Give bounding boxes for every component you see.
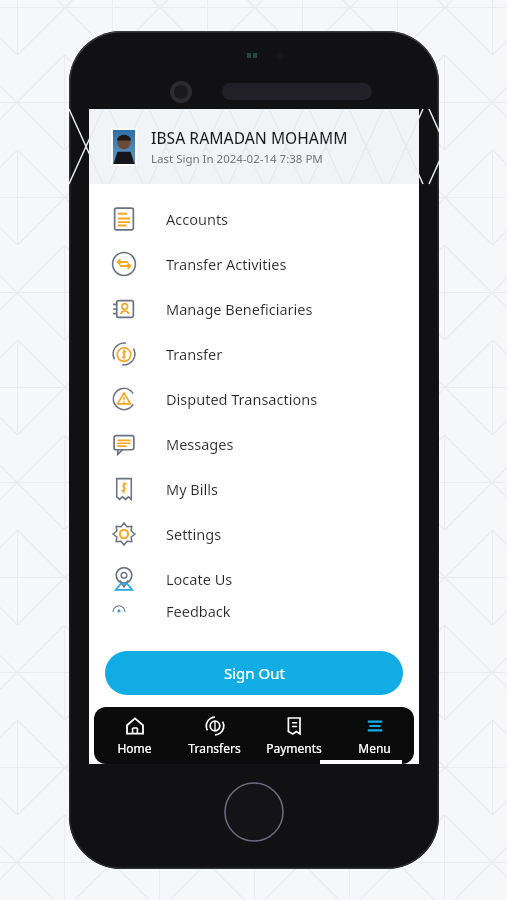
staticText: Disputed Transactions <box>166 389 318 409</box>
button[interactable]: Manage Beneficiaries <box>89 286 419 331</box>
staticText: Last Sign In 2024-02-14 7:38 PM <box>151 151 323 167</box>
button[interactable]: Menu <box>334 707 414 764</box>
button[interactable]: Disputed Transactions <box>89 376 419 421</box>
button[interactable]: Accounts <box>89 196 419 241</box>
staticText: My Bills <box>166 479 218 499</box>
button[interactable]: Home button <box>225 783 283 841</box>
staticText: Sign Out <box>224 663 285 683</box>
staticText: IBSA RAMADAN MOHAMM <box>151 127 348 148</box>
button[interactable]: Settings <box>89 511 419 556</box>
button[interactable]: My Bills <box>89 466 419 511</box>
button[interactable]: Home <box>94 707 174 764</box>
button[interactable]: Locate Us <box>89 556 419 601</box>
button[interactable]: Transfer Activities <box>89 241 419 286</box>
staticText: Payments <box>266 740 322 756</box>
staticText: Transfers <box>188 740 241 756</box>
button[interactable]: Transfers <box>174 707 254 764</box>
staticText: Accounts <box>166 209 229 229</box>
staticText: Feedback <box>166 601 231 617</box>
staticText: Manage Beneficiaries <box>166 299 313 319</box>
staticText: Settings <box>166 524 222 544</box>
button[interactable]: Sign Out <box>105 651 403 695</box>
button[interactable]: Transfer <box>89 331 419 376</box>
button[interactable]: Messages <box>89 421 419 466</box>
staticText: Messages <box>166 434 234 454</box>
staticText: Transfer Activities <box>166 254 287 274</box>
staticText: Menu <box>358 740 391 756</box>
button[interactable]: Feedback <box>89 601 419 617</box>
staticText: Locate Us <box>166 569 233 589</box>
button[interactable]: Payments <box>254 707 334 764</box>
staticText: Home <box>117 740 152 756</box>
staticText: Transfer <box>166 344 223 364</box>
